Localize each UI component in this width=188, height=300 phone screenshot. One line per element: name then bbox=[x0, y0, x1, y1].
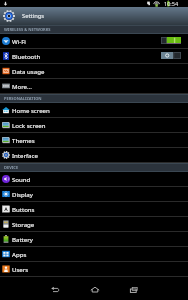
staticText: Battery bbox=[12, 235, 33, 243]
staticText: Interface bbox=[12, 151, 38, 159]
button[interactable]: Home screen bbox=[0, 103, 188, 118]
staticText: Home screen bbox=[12, 106, 50, 114]
staticText: Data usage bbox=[12, 67, 45, 75]
staticText: Apps bbox=[12, 250, 27, 258]
staticText: More... bbox=[12, 82, 32, 90]
button[interactable]: Home bbox=[84, 279, 105, 300]
staticText: Storage bbox=[12, 220, 35, 228]
button[interactable]: Themes bbox=[0, 133, 188, 148]
button[interactable]: Users bbox=[0, 262, 188, 277]
staticText: Wi-Fi bbox=[12, 37, 26, 45]
button[interactable]: Apps bbox=[0, 247, 188, 262]
staticText: WIRELESS & NETWORKS bbox=[4, 27, 51, 32]
staticText: Sound bbox=[12, 175, 31, 183]
staticText: Bluetooth bbox=[12, 52, 41, 60]
button[interactable]: Interface bbox=[0, 148, 188, 163]
button[interactable]: Battery bbox=[0, 232, 188, 247]
staticText: 10:54 bbox=[164, 0, 179, 7]
staticText: Settings bbox=[22, 12, 45, 20]
button[interactable]: Display bbox=[0, 187, 188, 202]
staticText: PERSONALIZATION bbox=[4, 96, 42, 101]
button[interactable]: Sound bbox=[0, 172, 188, 187]
button[interactable]: Lock screen bbox=[0, 118, 188, 133]
button[interactable]: Back bbox=[44, 279, 65, 300]
button[interactable]: Data usage bbox=[0, 64, 188, 79]
button[interactable]: Buttons bbox=[0, 202, 188, 217]
staticText: Buttons bbox=[12, 205, 35, 213]
staticText: DEVICE bbox=[4, 165, 19, 170]
button[interactable]: Bluetooth bbox=[0, 49, 188, 64]
button[interactable]: Recent apps bbox=[123, 279, 144, 300]
staticText: Display bbox=[12, 190, 33, 198]
button[interactable]: More... bbox=[0, 79, 188, 94]
staticText: Users bbox=[12, 265, 29, 273]
staticText: Themes bbox=[12, 136, 35, 144]
button[interactable]: Wi-Fi bbox=[0, 34, 188, 49]
button[interactable]: Storage bbox=[0, 217, 188, 232]
staticText: Lock screen bbox=[12, 121, 46, 129]
